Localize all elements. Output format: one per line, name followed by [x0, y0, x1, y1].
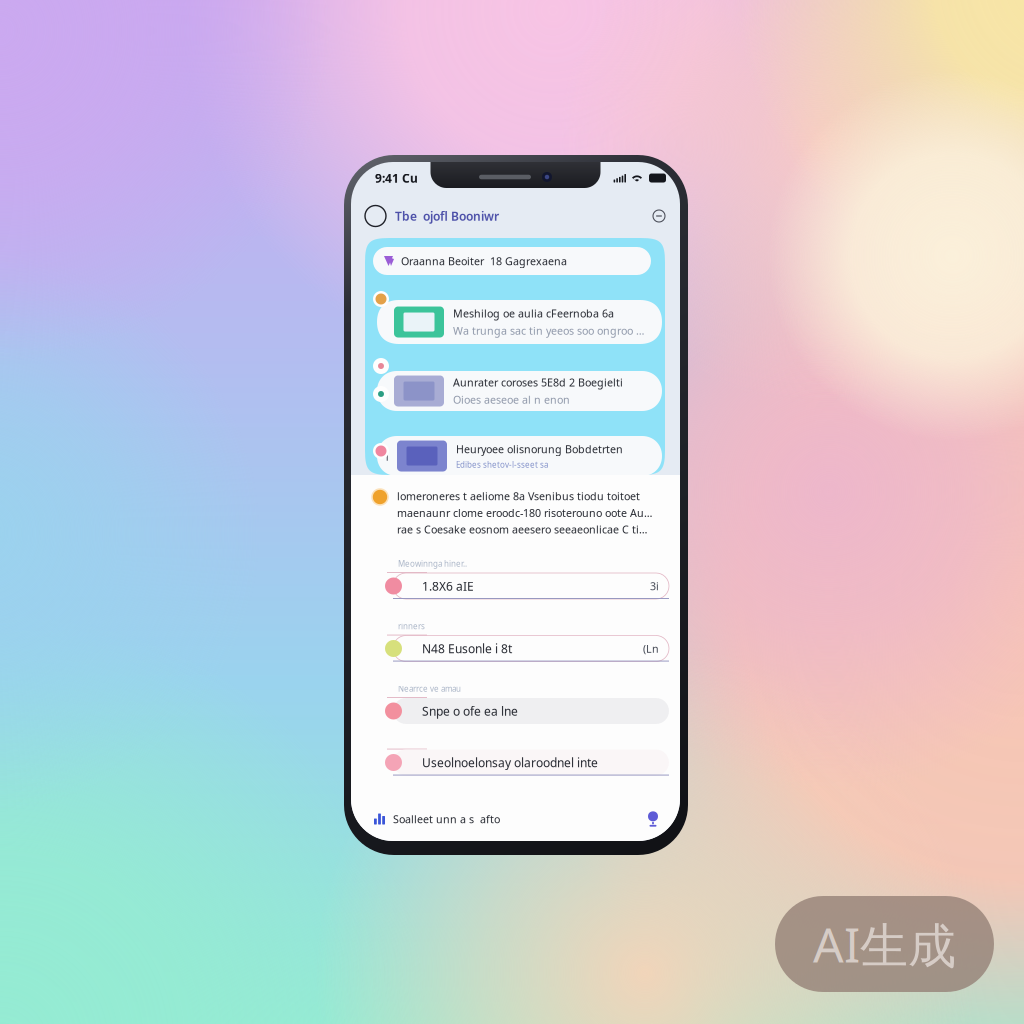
staticText: AI生成: [813, 912, 956, 976]
button[interactable]: N48 Eusonle i 8t: [393, 635, 669, 661]
staticText: 3i: [650, 579, 659, 593]
staticText: Meowinnga hiner..: [398, 558, 467, 569]
staticText: rae s Coesake eosnom aeesero seeaeonlica…: [397, 522, 652, 536]
button[interactable]: Profile: [365, 205, 386, 226]
button[interactable]: 1: [377, 436, 662, 476]
button[interactable]: Useolnoelonsay olaroodnel inte: [393, 749, 669, 775]
staticText: (Ln: [643, 641, 659, 656]
staticText: Tbe ojofl Booniwr: [395, 208, 499, 224]
staticText: Soalleet unn a s afto: [393, 812, 500, 826]
staticText: rinners: [398, 621, 425, 631]
button[interactable]: Snpe o ofe ea lne: [393, 698, 669, 724]
staticText: Oraanna Beoiter 18 Gagrexaena: [401, 254, 567, 268]
button[interactable]: Soalleet unn a s afto: [374, 812, 500, 826]
staticText: Heuryoee olisnorung Bobdetrten: [456, 442, 623, 456]
staticText: 1: [383, 448, 390, 464]
button[interactable]: Oraanna Beoiter 18 Gagrexaena: [373, 247, 651, 275]
staticText: N48 Eusonle i 8t: [422, 640, 512, 656]
staticText: 9:41 Cu: [375, 170, 418, 186]
staticText: Aunrater coroses 5E8d 2 Boegielti: [453, 375, 623, 389]
button[interactable]: 1.8X6 aIE: [393, 573, 669, 599]
staticText: Nearrce ve amau: [398, 683, 461, 694]
staticText: lomeroneres t aeliome 8a Vsenibus tiodu …: [397, 489, 640, 503]
button[interactable]: More options: [653, 210, 665, 222]
staticText: Edibes shetov-l-sseet sa: [456, 459, 548, 470]
staticText: Useolnoelonsay olaroodnel inte: [422, 754, 598, 770]
staticText: Wa trunga sac tin yeeos soo ongroo tirce: [453, 323, 646, 338]
staticText: Meshilog oe aulia cFeernoba 6a: [453, 306, 614, 320]
staticText: 1.8X6 aIE: [422, 578, 474, 594]
button[interactable]: Meshilog oe aulia cFeernoba 6a: [377, 300, 662, 344]
button[interactable]: Voice input: [648, 811, 658, 827]
staticText: Snpe o ofe ea lne: [422, 703, 518, 719]
button[interactable]: Aunrater coroses 5E8d 2 Boegielti: [377, 371, 662, 411]
staticText: Oioes aeseoe al n enon: [453, 392, 570, 407]
staticText: maenaunr clome eroodc-180 risoterouno oo…: [397, 506, 652, 520]
